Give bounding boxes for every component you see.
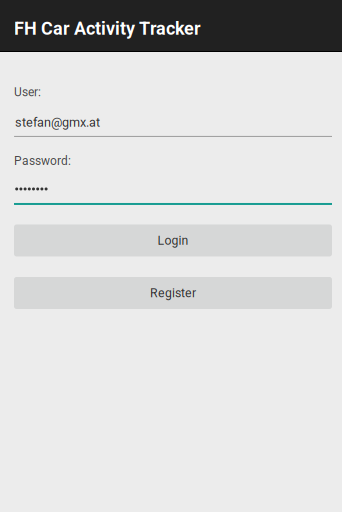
staticText: User: — [14, 85, 41, 99]
button[interactable]: Login — [14, 224, 332, 256]
staticText: Register — [150, 286, 196, 300]
button[interactable]: Register — [14, 277, 332, 309]
staticText: FH Car Activity Tracker — [14, 18, 201, 39]
staticText: Login — [157, 233, 188, 248]
staticText: Password: — [14, 154, 71, 168]
staticText: stefan@gmx.at — [15, 115, 100, 130]
button[interactable]: Password — [14, 182, 332, 205]
button[interactable]: stefan@gmx.at — [14, 115, 332, 137]
